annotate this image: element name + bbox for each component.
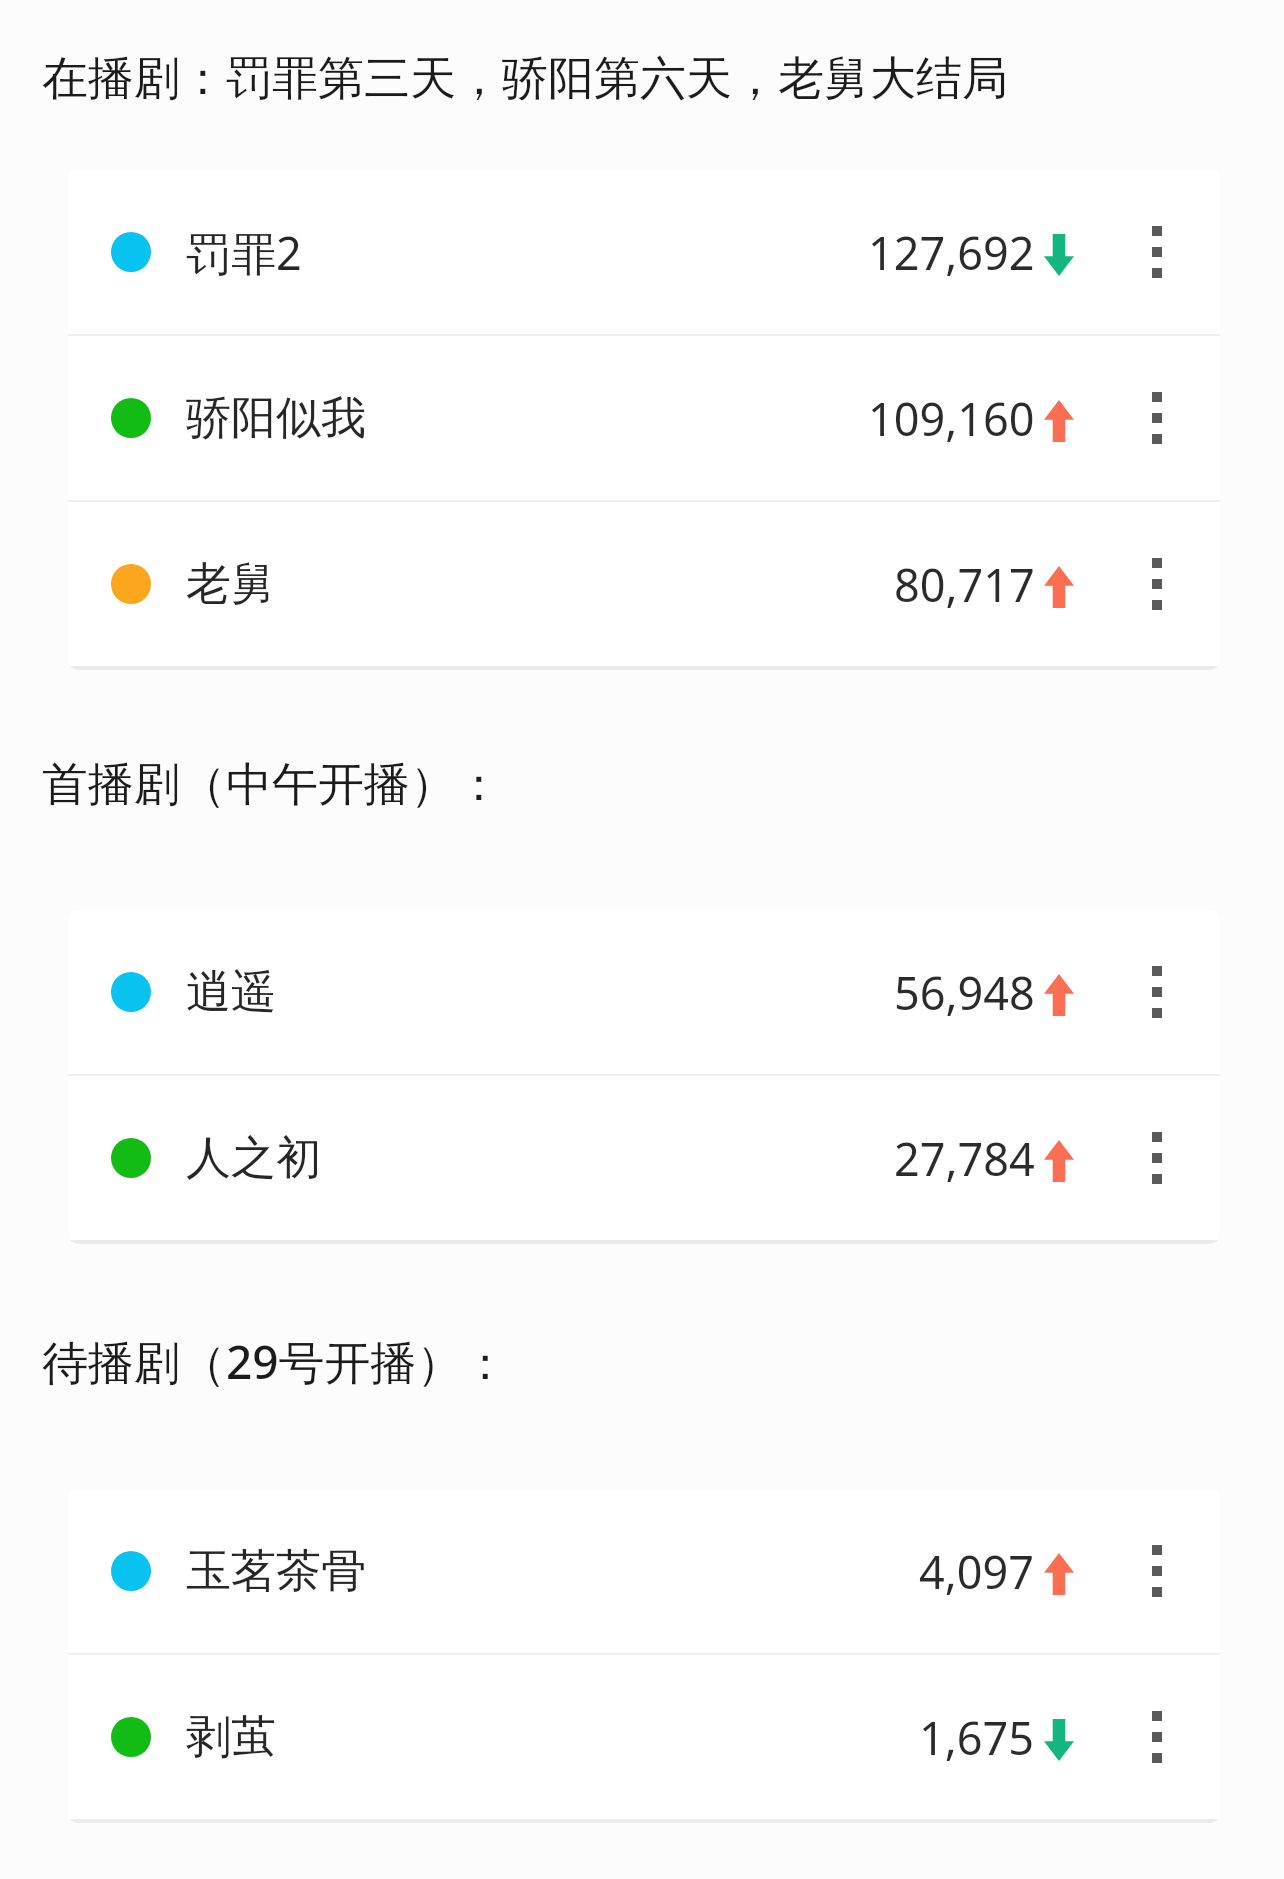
button[interactable]: More options (1124, 1682, 1190, 1792)
staticText: 27,784 (894, 1128, 1035, 1189)
button[interactable]: More options (1124, 1516, 1190, 1626)
button[interactable]: 逍遥 (68, 910, 1220, 1074)
button[interactable]: 老舅 (68, 502, 1220, 666)
button[interactable]: More options (1124, 363, 1190, 473)
button[interactable]: 人之初 (68, 1076, 1220, 1240)
staticText: 玉茗茶骨 (186, 1543, 366, 1600)
button[interactable]: 骄阳似我 (68, 336, 1220, 500)
button[interactable]: More options (1124, 1103, 1190, 1213)
button[interactable]: More options (1124, 529, 1190, 639)
button[interactable]: 罚罪2 (68, 170, 1220, 334)
staticText: 在播剧：罚罪第三天，骄阳第六天，老舅大结局 (42, 50, 1008, 108)
staticText: 109,160 (868, 388, 1035, 449)
staticText: 1,675 (919, 1707, 1035, 1768)
staticText: 56,948 (894, 962, 1035, 1023)
staticText: 127,692 (868, 222, 1035, 283)
staticText: 剥茧 (186, 1709, 276, 1766)
staticText: 老舅 (186, 556, 276, 613)
staticText: 逍遥 (186, 964, 276, 1021)
staticText: 首播剧（中午开播）： (42, 756, 502, 814)
staticText: 人之初 (186, 1130, 321, 1187)
staticText: 罚罪2 (186, 222, 302, 283)
button[interactable]: 玉茗茶骨 (68, 1489, 1220, 1653)
staticText: 待播剧（29号开播）： (42, 1330, 509, 1393)
button[interactable]: More options (1124, 937, 1190, 1047)
button[interactable]: More options (1124, 197, 1190, 307)
button[interactable]: 剥茧 (68, 1655, 1220, 1819)
staticText: 80,717 (894, 554, 1035, 615)
staticText: 骄阳似我 (186, 390, 366, 447)
staticText: 4,097 (919, 1541, 1035, 1602)
